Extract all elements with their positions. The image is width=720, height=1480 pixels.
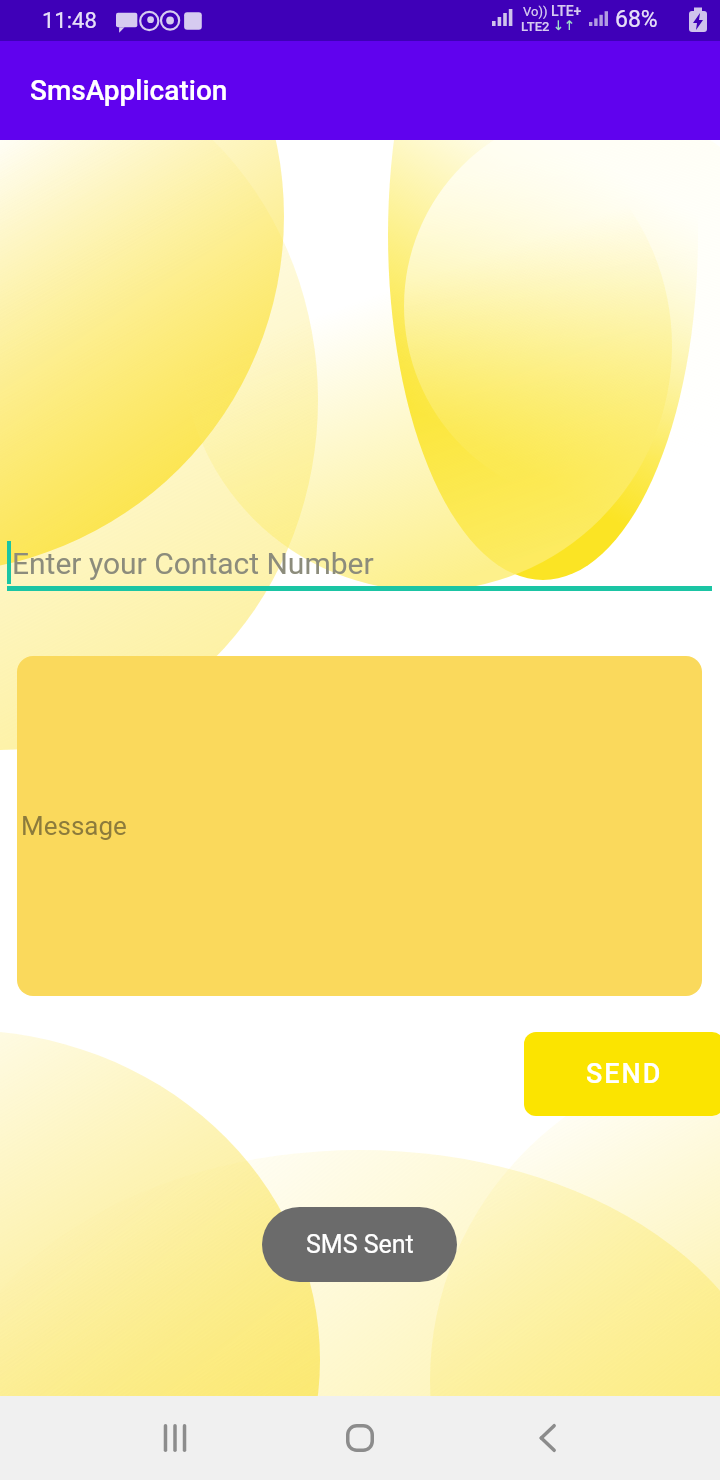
button[interactable]: Message [17, 656, 702, 996]
button[interactable]: Back [508, 1398, 588, 1478]
button[interactable]: Enter your Contact Number [0, 535, 720, 591]
staticText: SEND [586, 1058, 663, 1090]
button[interactable]: Recent apps [135, 1398, 215, 1478]
staticText: LTE2 [521, 19, 550, 34]
staticText: 68% [615, 6, 658, 33]
staticText: Vo)) [523, 4, 548, 19]
staticText: Enter your Contact Number [12, 546, 374, 581]
staticText: LTE+ [551, 3, 582, 19]
button[interactable]: Home [320, 1398, 400, 1478]
staticText: Message [21, 811, 127, 841]
staticText: SmsApplication [30, 74, 228, 107]
staticText: ↓↑ [553, 18, 575, 33]
staticText: 11:48 [42, 8, 97, 34]
button[interactable]: SEND [524, 1032, 720, 1116]
staticText: SMS Sent [306, 1230, 414, 1259]
